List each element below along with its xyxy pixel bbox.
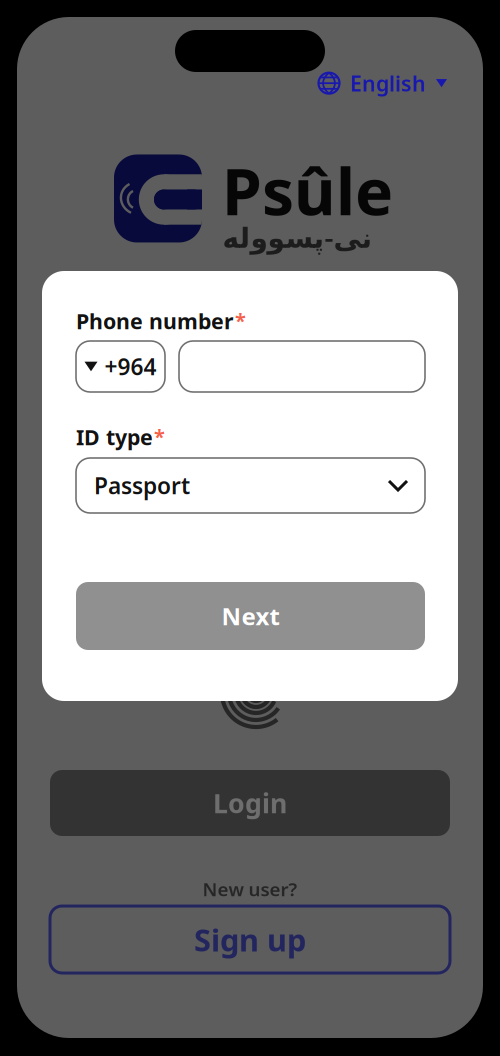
staticText: English xyxy=(350,69,426,97)
staticText: Phone number xyxy=(76,307,234,335)
staticText: نی-پسووله xyxy=(222,218,372,256)
button[interactable]: English xyxy=(315,64,450,102)
button[interactable]: Next xyxy=(76,582,425,650)
button[interactable]: Sign up xyxy=(50,906,450,973)
button[interactable]: Country code +964 xyxy=(76,341,165,392)
staticText: Psûle xyxy=(222,148,393,233)
staticText: Next xyxy=(221,600,279,632)
staticText: Passport xyxy=(94,470,190,500)
staticText: * xyxy=(235,307,246,333)
staticText: Login xyxy=(213,785,287,821)
staticText: New user? xyxy=(202,877,297,901)
staticText: +964 xyxy=(104,351,156,381)
staticText: Sign up xyxy=(194,919,306,960)
staticText: ID type xyxy=(76,423,153,451)
button[interactable]: Passport xyxy=(76,458,425,513)
button[interactable]: Login xyxy=(50,770,450,836)
staticText: * xyxy=(154,423,165,449)
button[interactable]: Phone number field xyxy=(179,341,425,392)
